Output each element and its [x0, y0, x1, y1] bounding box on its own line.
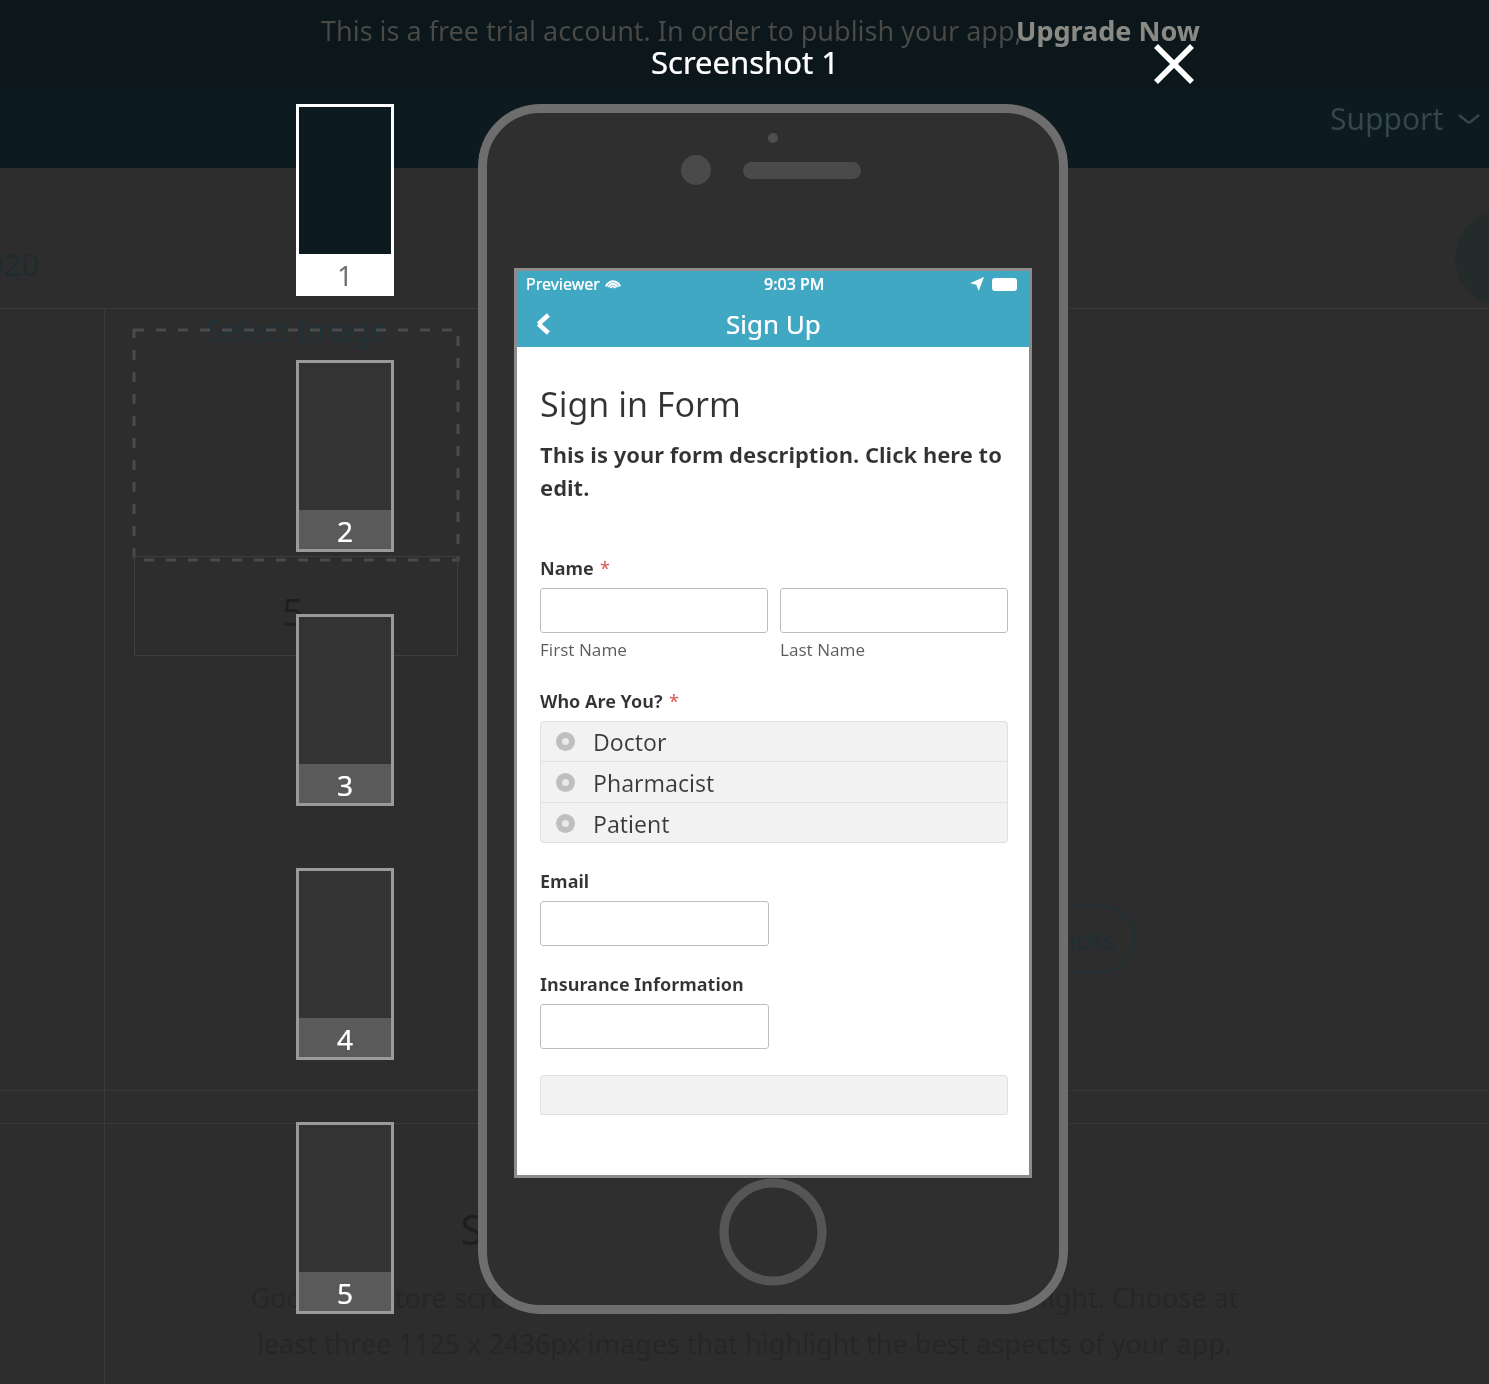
staticText: Showcase Your iPhone X App [460, 1200, 1029, 1257]
button[interactable]: Upgrade Now [1016, 12, 1200, 49]
staticText: 5 [282, 585, 304, 637]
button[interactable]: 4 [296, 868, 394, 1060]
staticText: Name [540, 556, 594, 581]
staticText: Who Are You? [540, 689, 663, 714]
staticText: This is a free trial account. In order t… [321, 12, 1029, 49]
staticText: Email [540, 869, 590, 894]
staticText: 4 [337, 1020, 354, 1058]
button[interactable]: Doctor [540, 721, 1008, 761]
staticText: 920 [0, 243, 40, 285]
button[interactable] [540, 588, 768, 633]
button[interactable]: 1 [296, 104, 394, 296]
staticText: Last Name [780, 638, 1008, 661]
staticText: Pharmacist [593, 767, 715, 798]
staticText: Support [1330, 98, 1444, 139]
staticText: 5 [337, 1274, 354, 1312]
staticText: This is your form description. Click her… [540, 439, 1002, 502]
button[interactable] [540, 901, 769, 946]
staticText: First Name [540, 638, 768, 661]
button[interactable] [540, 1004, 769, 1049]
button[interactable]: Support [1330, 98, 1480, 139]
button[interactable]: Back [526, 306, 562, 342]
button[interactable] [780, 588, 1008, 633]
staticText: Sign Up [726, 306, 821, 341]
staticText: Good app store screenshots help present … [250, 1279, 1239, 1362]
button[interactable]: 2 [296, 360, 394, 552]
button[interactable]: Patient [540, 803, 1008, 843]
staticText: 1 [337, 256, 354, 294]
staticText: Screenshot 1 [651, 41, 839, 83]
staticText: Patient [593, 808, 670, 839]
button[interactable]: 3 [296, 614, 394, 806]
staticText: Previewer [526, 273, 600, 295]
button[interactable]: 5 [296, 1122, 394, 1314]
button[interactable]: Close [1146, 36, 1202, 92]
staticText: Add screenshots [899, 920, 1117, 958]
button[interactable]: Add screenshots [880, 905, 1136, 973]
staticText: * [600, 556, 610, 581]
staticText: 9:03 PM [764, 273, 825, 295]
staticText: Doctor [593, 726, 667, 757]
staticText: * [669, 689, 679, 714]
staticText: Select Image [206, 310, 388, 351]
staticText: Sign in Form [540, 381, 741, 427]
staticText: Insurance Information [540, 972, 744, 997]
staticText: 2 [337, 512, 354, 550]
button[interactable]: Pharmacist [540, 762, 1008, 802]
staticText: 3 [337, 766, 354, 804]
